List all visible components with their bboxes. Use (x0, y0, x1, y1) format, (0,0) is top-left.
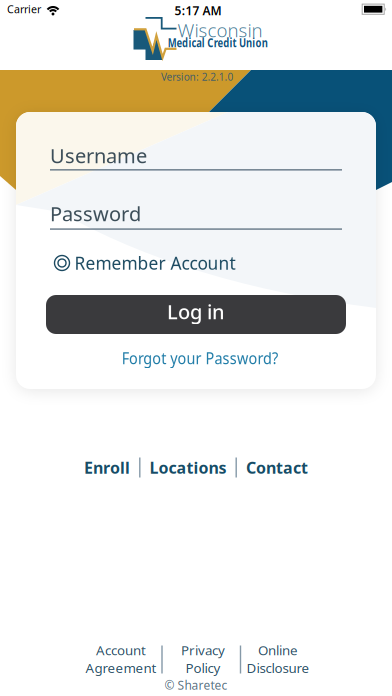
button[interactable]: Online (246, 641, 309, 677)
staticText: Agreement (85, 659, 156, 677)
button[interactable]: Contact (246, 457, 308, 478)
staticText: Forgot your Password? (113, 347, 287, 369)
staticText: Disclosure (246, 659, 309, 677)
button[interactable]: Account (85, 641, 156, 677)
button[interactable]: Password (50, 200, 342, 230)
button[interactable]: Username (50, 142, 342, 170)
staticText: 5:17 AM (172, 1, 224, 19)
button[interactable]: Log in (46, 295, 346, 334)
staticText: Wisconsin (177, 18, 262, 42)
button[interactable]: Locations (149, 457, 226, 478)
staticText: Enroll (84, 457, 130, 478)
staticText: Version: 2.2.1.0 (159, 69, 235, 84)
staticText: Carrier (7, 2, 41, 16)
staticText: Locations (149, 457, 226, 478)
staticText: Username (50, 142, 147, 169)
staticText: Policy (185, 659, 220, 677)
button[interactable]: Remember Account (54, 252, 235, 274)
button[interactable]: Privacy (181, 641, 225, 677)
staticText: Remember Account (74, 251, 235, 274)
staticText: Medical Credit Union (154, 34, 281, 50)
button[interactable]: Enroll (84, 457, 130, 478)
staticText: Privacy (181, 641, 225, 659)
staticText: Contact (246, 457, 308, 478)
staticText: Online (258, 641, 298, 659)
staticText: Account (96, 641, 146, 659)
staticText: Log in (167, 298, 225, 325)
staticText: Password (50, 200, 141, 227)
button[interactable]: Forgot your Password? (113, 347, 287, 369)
staticText: © Sharetec (164, 677, 227, 693)
